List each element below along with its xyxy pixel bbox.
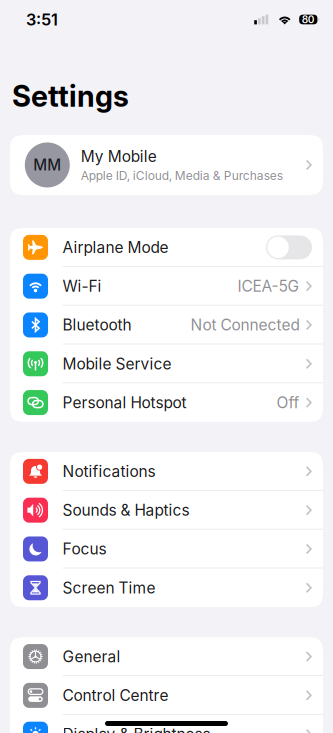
button[interactable]: Notifications [10,452,323,491]
staticText: General [63,647,121,666]
button[interactable]: Sounds & Haptics [10,491,323,530]
staticText: Apple ID, iCloud, Media & Purchases [81,168,283,183]
staticText: Airplane Mode [63,238,169,256]
staticText: My Mobile [81,147,157,165]
button[interactable]: Airplane Mode [10,228,323,267]
staticText: ICEA-5G [238,277,300,295]
staticText: Sounds & Haptics [63,501,190,519]
button[interactable]: General [10,637,323,676]
button[interactable]: Wi-Fi [10,267,323,306]
button[interactable]: Control Centre [10,676,323,715]
staticText: Control Centre [63,686,169,704]
staticText: Notifications [63,462,156,480]
staticText: MM [33,156,61,174]
button[interactable]: Bluetooth [10,306,323,344]
staticText: Bluetooth [63,316,132,334]
button[interactable]: Display & Brightness [10,715,323,733]
staticText: Settings [12,79,129,113]
staticText: 3:51 [26,10,58,29]
button[interactable]: Focus [10,530,323,568]
staticText: Off [277,393,300,412]
button[interactable]: Mobile Service [10,344,323,383]
staticText: Mobile Service [63,355,172,373]
button[interactable]: Screen Time [10,568,323,607]
staticText: 80 [302,13,315,25]
staticText: Personal Hotspot [63,393,187,412]
button[interactable]: MM [10,135,323,195]
staticText: Display & Brightness [63,725,211,733]
staticText: Focus [63,540,107,558]
staticText: Wi-Fi [63,277,102,295]
button[interactable]: Personal Hotspot [10,383,323,422]
staticText: Not Connected [191,316,300,334]
staticText: Screen Time [63,579,156,597]
